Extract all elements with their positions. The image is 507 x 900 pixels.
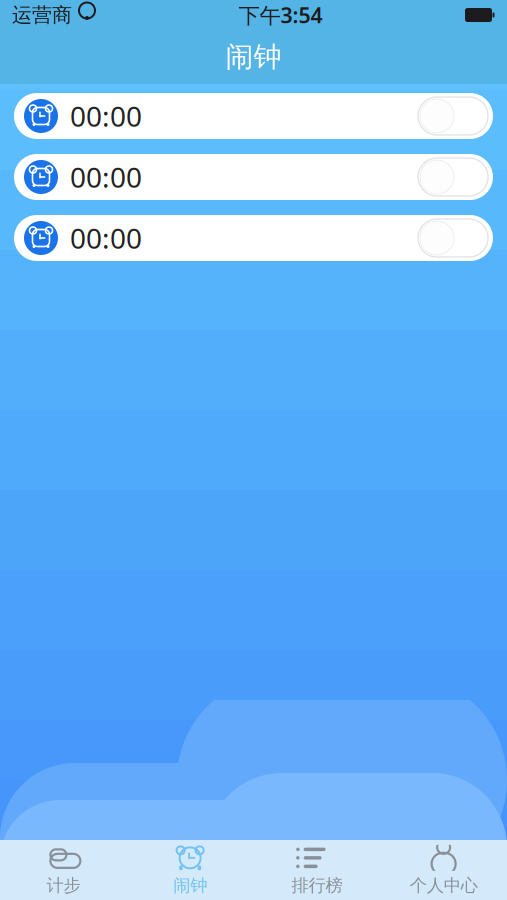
staticText: 00:00 bbox=[70, 158, 142, 196]
button[interactable]: 个人中心 bbox=[380, 840, 507, 900]
button[interactable]: 00:00 bbox=[14, 154, 493, 200]
button[interactable]: 计步 bbox=[0, 840, 127, 900]
staticText: 下午3:54 bbox=[238, 1, 322, 29]
staticText: 计步 bbox=[46, 875, 80, 896]
staticText: 00:00 bbox=[70, 97, 142, 135]
button[interactable]: 00:00 bbox=[14, 215, 493, 261]
staticText: 个人中心 bbox=[410, 875, 478, 896]
staticText: 闹钟 bbox=[225, 40, 281, 74]
button[interactable]: 排行榜 bbox=[253, 840, 380, 900]
staticText: 运营商 bbox=[12, 3, 72, 27]
button[interactable]: 闹钟 bbox=[0, 30, 507, 84]
button[interactable]: 00:00 bbox=[14, 93, 493, 139]
button[interactable]: 闹钟 bbox=[127, 840, 254, 900]
staticText: 排行榜 bbox=[291, 875, 342, 896]
staticText: 闹钟 bbox=[173, 875, 207, 896]
staticText: 00:00 bbox=[70, 219, 142, 257]
